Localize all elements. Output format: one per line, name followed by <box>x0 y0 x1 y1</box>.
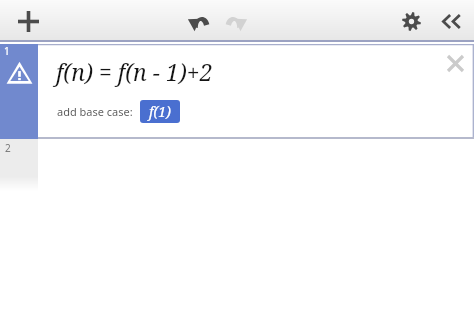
staticText: 1 <box>4 44 10 58</box>
staticText: 2 <box>5 141 11 155</box>
button[interactable]: Settings <box>393 0 429 42</box>
staticText: f(1) <box>149 102 171 121</box>
staticText: f(n) = f(n − 1)+2 <box>56 56 213 87</box>
button[interactable]: Add expression <box>6 0 50 42</box>
button[interactable]: f(1) <box>140 100 180 123</box>
button[interactable]: 1 <box>0 44 38 139</box>
staticText: add base case: <box>57 104 133 119</box>
button[interactable]: Dismiss warning <box>442 50 468 76</box>
button[interactable]: Redo <box>217 0 255 42</box>
button[interactable]: 2 <box>0 139 38 191</box>
button[interactable]: Collapse panel <box>429 0 469 42</box>
button[interactable]: Undo <box>179 0 217 42</box>
